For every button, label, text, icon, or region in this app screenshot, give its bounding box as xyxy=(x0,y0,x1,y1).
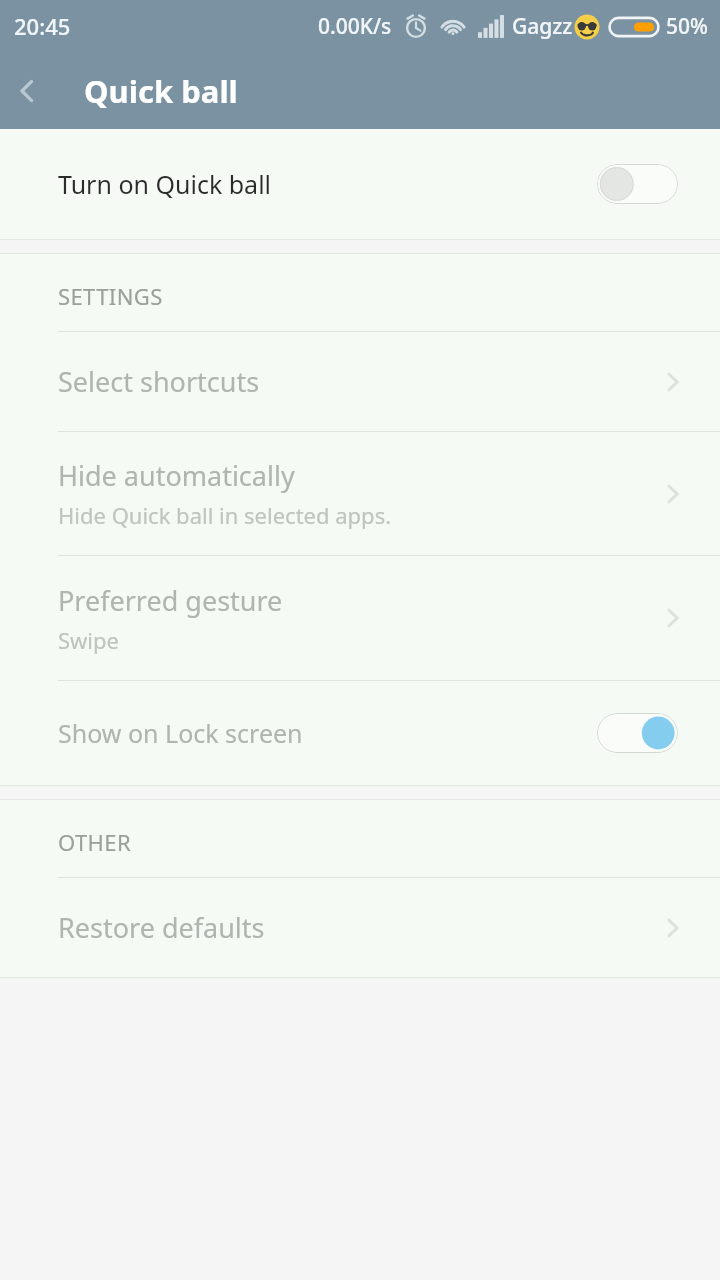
staticText: Hide Quick ball in selected apps. xyxy=(58,500,392,530)
staticText: OTHER xyxy=(58,827,131,857)
button[interactable]: Select shortcuts xyxy=(0,332,720,431)
staticText: Hide automatically xyxy=(58,457,295,494)
staticText: Swipe xyxy=(58,625,119,655)
button[interactable]: Turn on Quick ball xyxy=(0,129,720,239)
staticText: Restore defaults xyxy=(58,909,265,946)
button[interactable]: Hide automatically xyxy=(0,432,720,555)
staticText: Gagzz xyxy=(512,12,573,41)
button[interactable]: Restore defaults xyxy=(0,878,720,977)
staticText: Turn on Quick ball xyxy=(58,167,597,201)
button[interactable]: Preferred gesture xyxy=(0,556,720,680)
staticText: Quick ball xyxy=(84,70,238,112)
staticText: SETTINGS xyxy=(58,281,163,311)
staticText: Show on Lock screen xyxy=(58,716,597,750)
staticText: 20:45 xyxy=(14,11,71,41)
staticText: Select shortcuts xyxy=(58,363,260,400)
staticText: 0.00K/s xyxy=(318,12,392,41)
staticText: Preferred gesture xyxy=(58,582,283,619)
button[interactable]: Back xyxy=(0,63,56,119)
staticText: 50% xyxy=(666,12,708,41)
button[interactable]: Show on Lock screen xyxy=(0,681,720,785)
